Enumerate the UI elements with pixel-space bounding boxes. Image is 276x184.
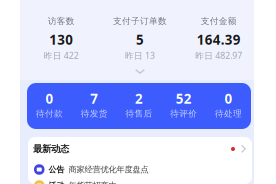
staticText: 52 xyxy=(176,89,192,108)
staticText: 5 xyxy=(136,30,144,49)
button[interactable]: 2 xyxy=(117,89,161,119)
staticText: 7 xyxy=(90,89,98,108)
staticText: 130 xyxy=(49,30,73,49)
button[interactable]: 支付金额 xyxy=(179,13,258,61)
staticText: 活动 xyxy=(48,180,64,184)
button[interactable]: 0 xyxy=(206,89,251,119)
button[interactable]: 最新动态 xyxy=(33,142,246,156)
button[interactable]: 活动 xyxy=(34,178,246,184)
staticText: 0 xyxy=(225,89,233,108)
staticText: 昨日 13 xyxy=(125,50,155,61)
staticText: 访客数 xyxy=(48,15,75,26)
staticText: 昨日 482.97 xyxy=(195,50,242,61)
button[interactable]: 支付子订单数 xyxy=(101,13,179,61)
staticText: 0 xyxy=(45,89,53,108)
button[interactable]: 52 xyxy=(161,89,206,119)
staticText: 公告 xyxy=(48,164,64,175)
staticText: 2 xyxy=(135,89,143,108)
staticText: 最新动态 xyxy=(33,143,69,155)
staticText: 待处理 xyxy=(215,108,242,119)
staticText: 昨日 422 xyxy=(44,50,79,61)
staticText: 待售后 xyxy=(125,108,152,119)
button[interactable]: 访客数 xyxy=(22,13,101,61)
staticText: 年货节招商中 xyxy=(68,180,116,184)
button[interactable]: 公告 xyxy=(34,162,246,177)
staticText: 待发货 xyxy=(81,108,108,119)
staticText: 待付款 xyxy=(36,108,63,119)
staticText: 商家经营优化年度盘点 xyxy=(68,164,148,175)
staticText: 164.39 xyxy=(197,30,241,49)
staticText: 支付子订单数 xyxy=(113,15,167,26)
staticText: 支付金额 xyxy=(201,15,237,26)
button[interactable]: 0 xyxy=(27,89,72,119)
button[interactable]: 7 xyxy=(72,89,117,119)
staticText: 待评价 xyxy=(170,108,197,119)
